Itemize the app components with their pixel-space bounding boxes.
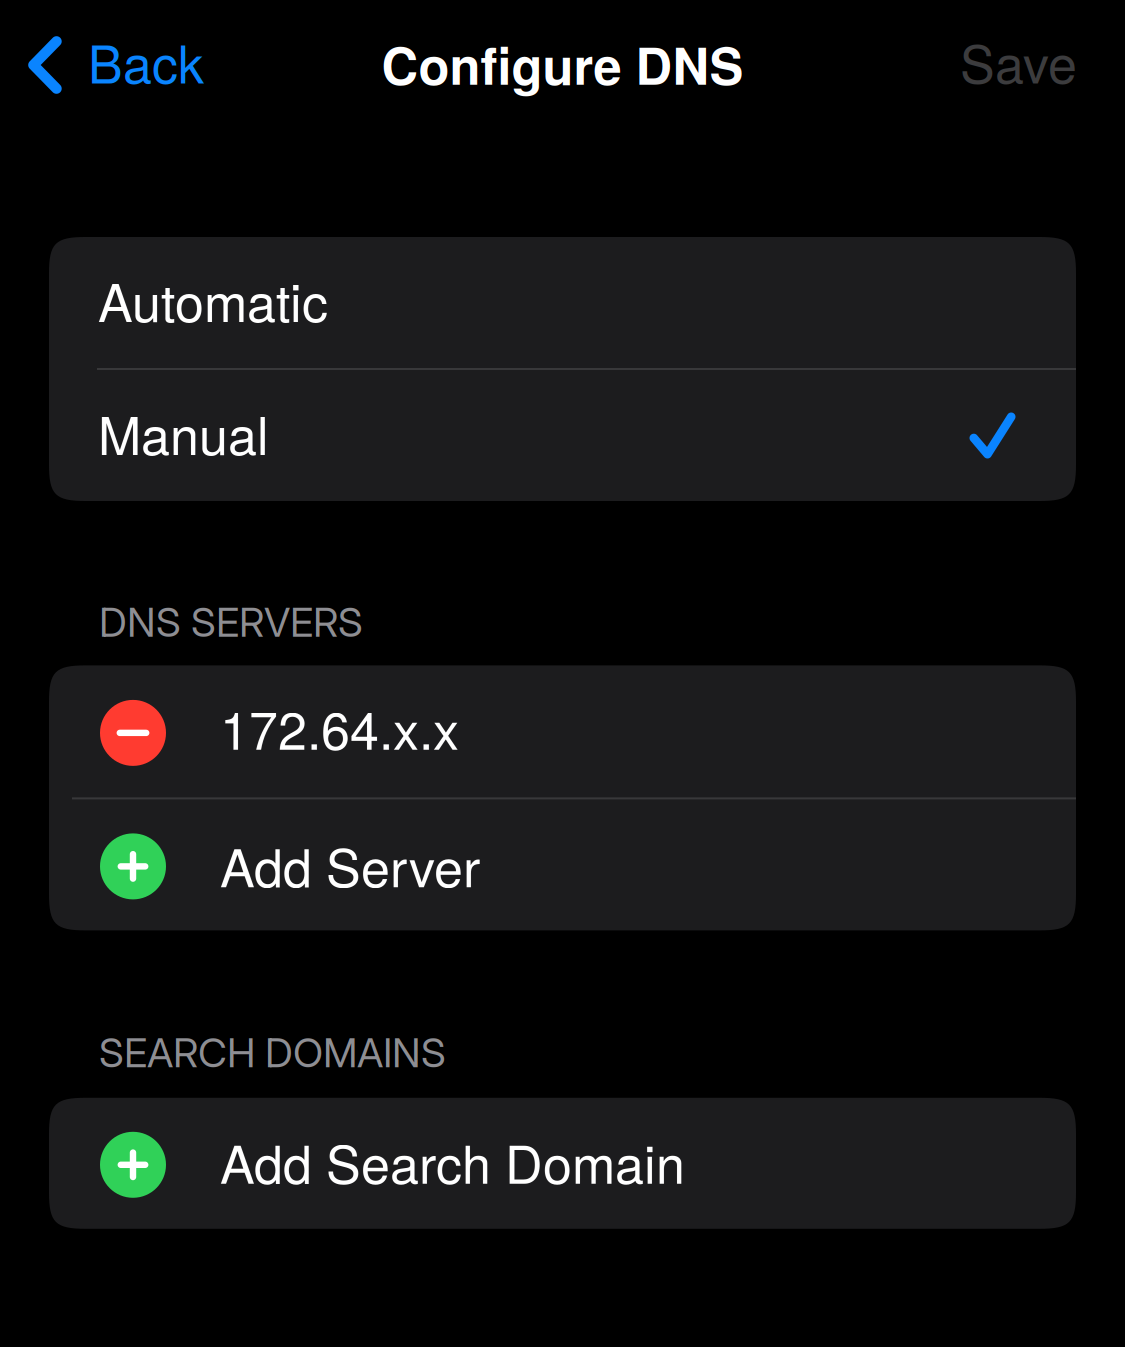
staticText: Manual: [98, 395, 269, 470]
staticText: DNS SERVERS: [99, 598, 363, 646]
button[interactable]: Automatic: [49, 237, 1076, 368]
staticText: SEARCH DOMAINS: [99, 1028, 446, 1077]
button[interactable]: Save: [930, 0, 1125, 127]
button[interactable]: Add Search Domain: [49, 1098, 1076, 1229]
button[interactable]: Manual: [49, 370, 1076, 501]
staticText: Configure DNS: [381, 28, 743, 100]
staticText: Add Search Domain: [220, 1124, 685, 1199]
staticText: Back: [88, 24, 204, 98]
staticText: 172.64.x.x: [220, 690, 459, 765]
button[interactable]: Back: [0, 0, 226, 127]
staticText: Automatic: [98, 262, 328, 337]
staticText: Save: [960, 24, 1077, 98]
button[interactable]: Add Server: [49, 799, 1076, 930]
staticText: Add Server: [220, 828, 480, 902]
button[interactable]: 172.64.x.x: [49, 665, 1076, 797]
